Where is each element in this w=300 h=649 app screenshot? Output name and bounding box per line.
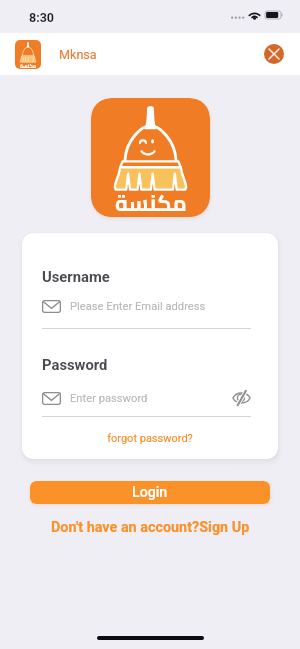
button[interactable]: Don't have an account?Sign Up (51, 519, 250, 536)
button[interactable]: Login (30, 481, 270, 504)
staticText: Username (42, 268, 110, 285)
staticText: مكنسة (115, 182, 187, 217)
staticText: Please Enter Email address (70, 300, 206, 313)
button[interactable]: Close (264, 44, 284, 64)
staticText: مكنسة (20, 61, 37, 69)
button[interactable]: Please Enter Email address (42, 300, 251, 329)
staticText: Login (132, 484, 168, 501)
staticText: Enter password (70, 392, 148, 405)
button[interactable]: forgot password? (22, 432, 278, 445)
staticText: Password (42, 356, 108, 373)
button[interactable]: Enter password (42, 388, 251, 417)
staticText: Mknsa (59, 47, 97, 62)
button[interactable]: Toggle password visibility (231, 388, 251, 408)
staticText: 8:30 (29, 10, 55, 25)
button[interactable]: Mknsa logo (15, 40, 41, 69)
